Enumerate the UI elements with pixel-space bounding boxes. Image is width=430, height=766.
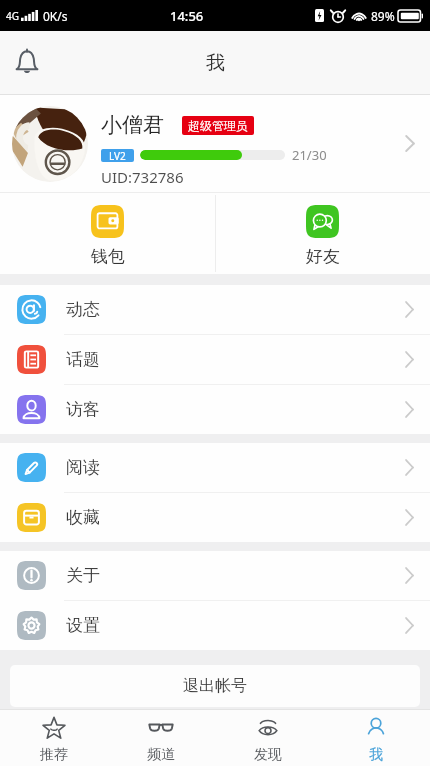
staticText: 小僧君	[101, 112, 164, 138]
staticText: 89%	[371, 8, 395, 24]
staticText: 访客	[66, 399, 100, 420]
staticText: 阅读	[66, 457, 100, 478]
button[interactable]: 退出帐号	[10, 665, 420, 707]
staticText: LV2	[109, 149, 126, 162]
button[interactable]: Notifications	[5, 40, 49, 84]
button[interactable]: 动态	[0, 285, 430, 334]
staticText: 发现	[254, 746, 282, 764]
button[interactable]: 好友	[215, 193, 430, 274]
button[interactable]: 小僧君	[0, 95, 430, 192]
staticText: 21/30	[292, 146, 327, 164]
staticText: 收藏	[66, 507, 100, 528]
button[interactable]: 我	[322, 709, 430, 766]
button[interactable]: 发现	[214, 709, 322, 766]
button[interactable]: 设置	[0, 601, 430, 650]
button[interactable]: 收藏	[0, 493, 430, 542]
staticText: 超级管理员	[188, 118, 248, 133]
staticText: 关于	[66, 565, 100, 586]
button[interactable]: 访客	[0, 385, 430, 434]
staticText: 动态	[66, 299, 100, 320]
staticText: 设置	[66, 615, 100, 636]
button[interactable]: 频道	[107, 709, 214, 766]
staticText: 4G	[6, 9, 19, 23]
staticText: 0K/s	[43, 8, 68, 24]
staticText: 退出帐号	[183, 676, 247, 696]
staticText: UID:732786	[101, 167, 184, 187]
staticText: 14:56	[170, 7, 204, 25]
staticText: 我	[369, 746, 383, 764]
button[interactable]: 关于	[0, 551, 430, 600]
button[interactable]: 钱包	[0, 193, 215, 274]
button[interactable]: 阅读	[0, 443, 430, 492]
staticText: 话题	[66, 349, 100, 370]
staticText: 我	[206, 51, 225, 75]
staticText: 频道	[147, 746, 175, 764]
staticText: 钱包	[91, 246, 125, 267]
button[interactable]: 话题	[0, 335, 430, 384]
button[interactable]: 推荐	[0, 709, 107, 766]
staticText: 推荐	[40, 746, 68, 764]
staticText: 好友	[306, 246, 340, 267]
